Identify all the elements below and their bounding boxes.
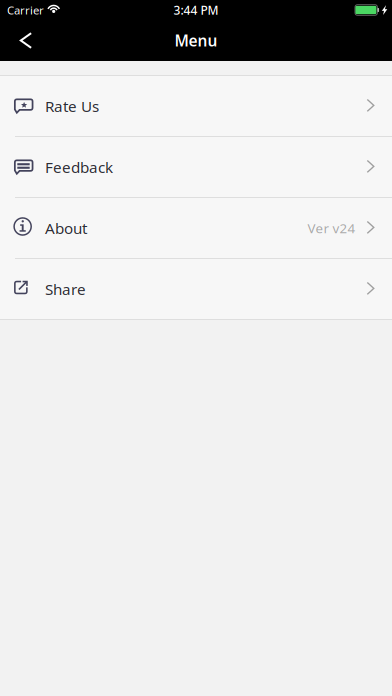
button[interactable]: Back xyxy=(0,20,52,61)
staticText: Feedback xyxy=(45,157,113,177)
staticText: Share xyxy=(45,279,86,299)
staticText: Carrier xyxy=(7,2,44,18)
button[interactable]: About xyxy=(0,198,392,258)
staticText: Rate Us xyxy=(45,96,99,116)
button[interactable]: Feedback xyxy=(0,137,392,197)
button[interactable]: Share xyxy=(0,259,392,319)
staticText: About xyxy=(45,218,87,238)
staticText: Menu xyxy=(174,30,217,51)
staticText: Ver v24 xyxy=(308,219,356,237)
staticText: 3:44 PM xyxy=(173,2,218,18)
button[interactable]: Rate Us xyxy=(0,76,392,136)
